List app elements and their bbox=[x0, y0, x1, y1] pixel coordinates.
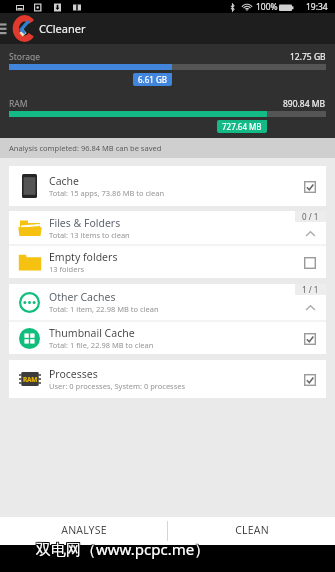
staticText: Cache bbox=[49, 174, 79, 188]
staticText: ANALYSE bbox=[61, 523, 107, 537]
staticText: 双电网（www.pcpc.me） bbox=[35, 540, 209, 560]
button[interactable]: ANALYSE bbox=[0, 517, 167, 545]
staticText: Total: 13 items to clean bbox=[49, 230, 130, 240]
staticText: 727.64 MB bbox=[222, 121, 262, 132]
button[interactable]: Collapse Other Caches bbox=[298, 295, 322, 319]
button[interactable]: Empty folders bbox=[9, 246, 326, 278]
staticText: Thumbnail Cache bbox=[49, 326, 135, 340]
button[interactable]: 0 / 1 bbox=[9, 211, 326, 244]
staticText: 13 folders bbox=[49, 264, 85, 274]
staticText: 双电网（www.pcpc.me） bbox=[36, 538, 210, 558]
button[interactable]: Open navigation drawer bbox=[0, 13, 14, 44]
staticText: Total: 1 file, 22.98 MB to clean bbox=[49, 340, 154, 350]
staticText: 19:34 bbox=[306, 1, 328, 13]
button[interactable]: Select Thumbnail Cache bbox=[298, 327, 322, 351]
button[interactable]: CLEAN bbox=[168, 517, 335, 545]
staticText: 1 / 1 bbox=[302, 284, 319, 295]
staticText: 12.75 GB bbox=[290, 51, 326, 61]
button[interactable]: Collapse Files & Folders bbox=[298, 221, 322, 245]
staticText: Other Caches bbox=[49, 290, 116, 304]
button[interactable]: 1 / 1 bbox=[9, 284, 326, 320]
staticText: 890.84 MB bbox=[283, 98, 326, 108]
staticText: 双电网（www.pcpc.me） bbox=[36, 540, 210, 560]
button[interactable]: Thumbnail Cache bbox=[9, 322, 326, 354]
button[interactable]: RAM bbox=[9, 360, 326, 398]
button[interactable]: Select Empty folders bbox=[298, 251, 322, 275]
staticText: Analysis completed: 96.84 MB can be save… bbox=[9, 143, 162, 153]
staticText: 双电网（www.pcpc.me） bbox=[37, 539, 211, 559]
staticText: RAM bbox=[23, 375, 38, 384]
staticText: Processes bbox=[49, 367, 98, 381]
staticText: CLEAN bbox=[235, 523, 269, 537]
staticText: 0 / 1 bbox=[302, 211, 319, 222]
staticText: User: 0 processes, System: 0 processes bbox=[49, 381, 186, 391]
staticText: 6.61 GB bbox=[138, 74, 167, 85]
staticText: 双电网（www.pcpc.me） bbox=[37, 540, 211, 560]
staticText: RAM bbox=[9, 98, 28, 108]
staticText: CCleaner bbox=[39, 21, 86, 36]
button[interactable]: Select Cache bbox=[298, 175, 322, 199]
button[interactable]: Select Processes bbox=[298, 368, 322, 392]
staticText: 100% bbox=[256, 1, 278, 13]
staticText: Storage bbox=[9, 51, 41, 61]
staticText: 双电网（www.pcpc.me） bbox=[35, 539, 209, 559]
staticText: 双电网（www.pcpc.me） bbox=[37, 538, 211, 558]
staticText: Total: 15 apps, 73.86 MB to clean bbox=[49, 188, 165, 198]
staticText: Files & Folders bbox=[49, 216, 121, 230]
staticText: Total: 1 item, 22.98 MB to clean bbox=[49, 304, 159, 314]
staticText: 双电网（www.pcpc.me） bbox=[36, 539, 210, 559]
staticText: 双电网（www.pcpc.me） bbox=[35, 538, 209, 558]
button[interactable]: Cache bbox=[9, 166, 326, 206]
staticText: Empty folders bbox=[49, 250, 118, 264]
